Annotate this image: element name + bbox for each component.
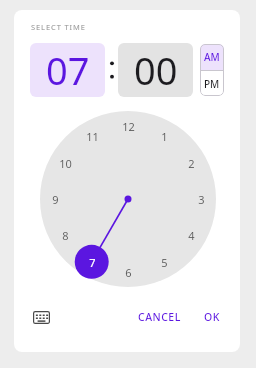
staticText: OK <box>204 310 220 324</box>
staticText: 6 <box>125 265 132 280</box>
staticText: 4 <box>188 228 195 243</box>
staticText: 00 <box>134 44 178 96</box>
staticText: AM <box>204 50 220 64</box>
staticText: 1 <box>161 129 168 144</box>
button[interactable]: 1 <box>40 111 216 287</box>
staticText: 07 <box>46 44 90 96</box>
staticText: 9 <box>52 192 59 207</box>
staticText: 10 <box>59 156 72 171</box>
staticText: 8 <box>62 228 69 243</box>
button[interactable]: CANCEL <box>131 305 188 329</box>
button[interactable]: PM <box>200 71 224 96</box>
staticText: 2 <box>188 156 195 171</box>
button[interactable]: 00 <box>118 43 193 97</box>
staticText: CANCEL <box>138 310 181 324</box>
button[interactable]: AM <box>200 44 224 70</box>
button[interactable]: Switch to text input mode <box>28 304 54 330</box>
staticText: 11 <box>86 129 99 144</box>
staticText: SELECT TIME <box>31 22 86 32</box>
staticText: PM <box>204 77 220 91</box>
staticText: 7 <box>89 255 96 270</box>
staticText: 5 <box>161 255 168 270</box>
button[interactable]: 07 <box>30 43 105 97</box>
button[interactable]: OK <box>197 305 227 329</box>
staticText: 3 <box>198 192 205 207</box>
staticText: 12 <box>122 119 135 134</box>
